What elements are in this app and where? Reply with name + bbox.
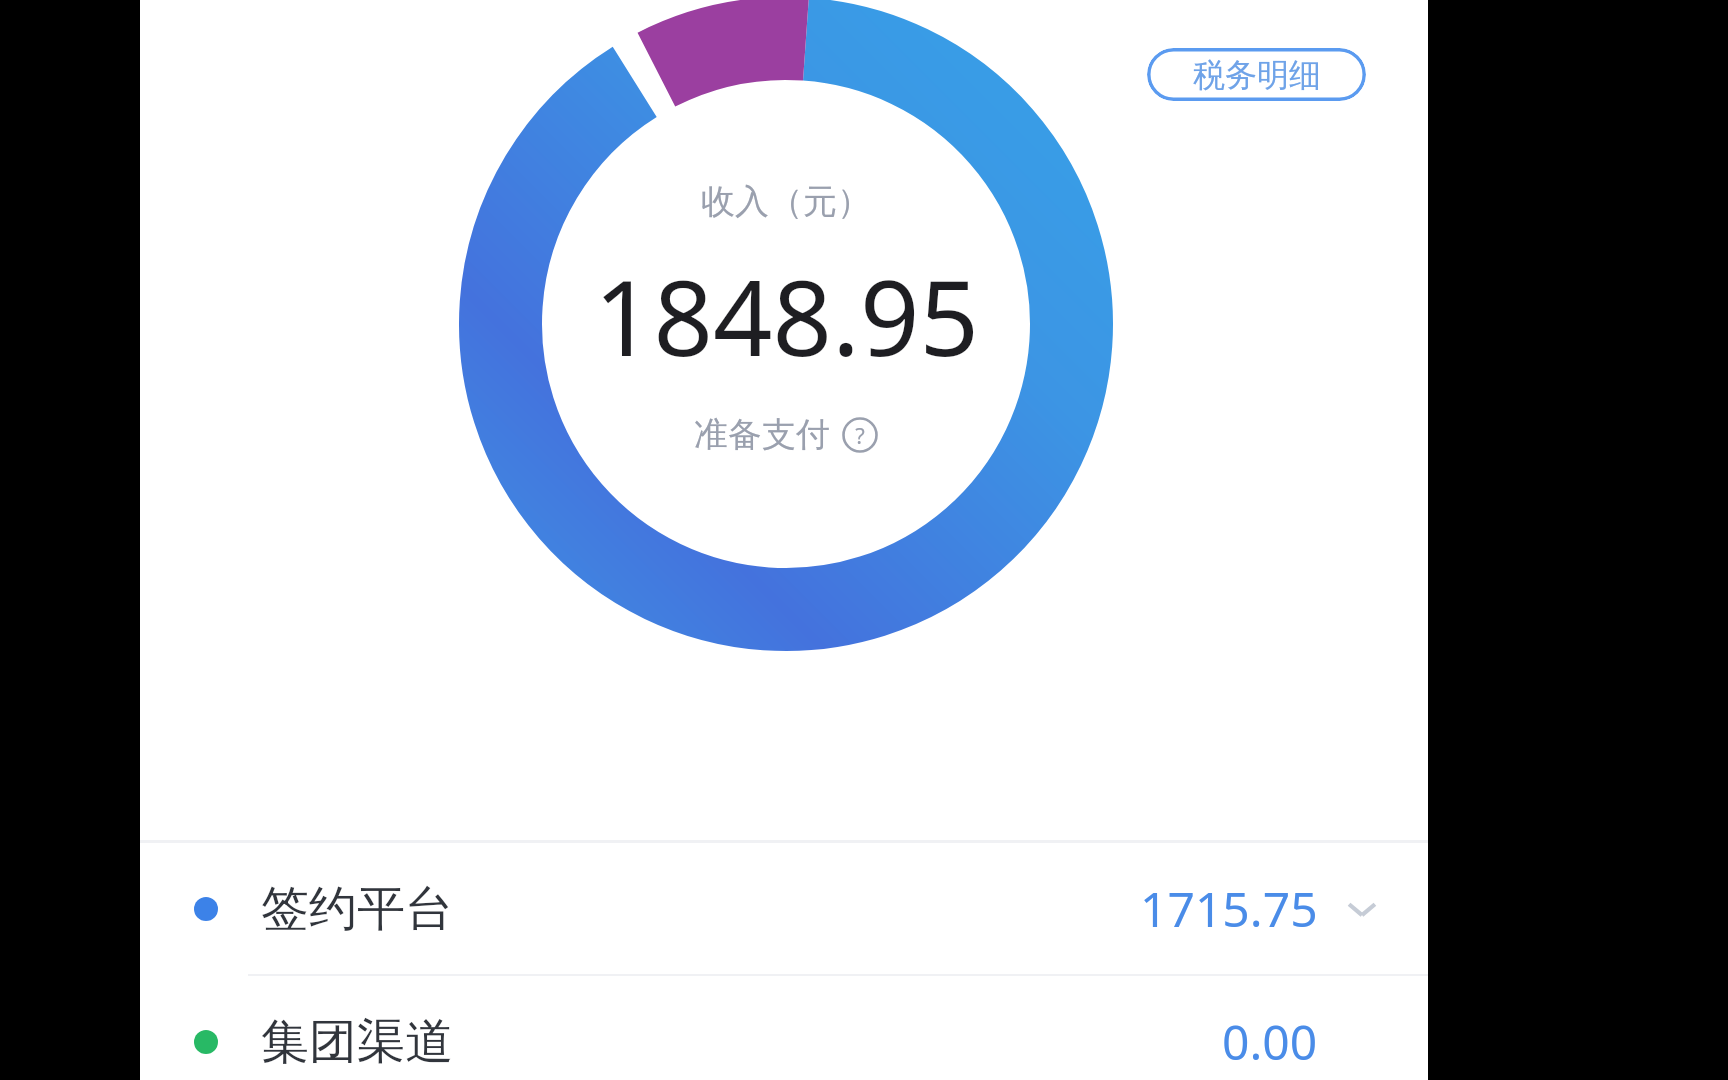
button[interactable]: 税务明细 [1147,48,1366,101]
staticText: 1848.95 [594,245,979,387]
staticText: 集团渠道 [261,1012,453,1072]
staticText: 签约平台 [261,879,453,939]
button[interactable]: 签约平台 [140,843,1428,974]
button[interactable]: 集团渠道 [140,976,1428,1080]
button[interactable]: 帮助说明 [842,417,878,453]
staticText: 准备支付 [694,413,830,456]
staticText: ? [855,420,865,450]
staticText: 收入（元） [701,180,871,223]
staticText: 0.00 [1222,1009,1318,1074]
staticText: 1715.75 [1140,876,1318,941]
staticText: 税务明细 [1193,55,1321,95]
